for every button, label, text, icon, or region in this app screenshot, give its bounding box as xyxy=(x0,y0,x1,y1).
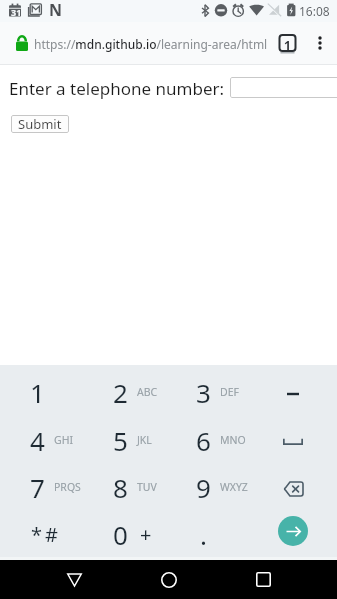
staticText: 3 xyxy=(196,375,211,410)
staticText: N xyxy=(49,0,63,21)
staticText: DEF xyxy=(220,385,239,399)
button[interactable]: More options xyxy=(311,22,329,65)
staticText: 5 xyxy=(113,423,128,458)
button[interactable]: 2 xyxy=(79,369,161,415)
staticText: 31 xyxy=(11,6,22,18)
button[interactable]: Submit xyxy=(11,115,69,133)
button[interactable]: 4 xyxy=(0,417,78,463)
button[interactable]: 5 xyxy=(79,417,161,463)
staticText: 7 xyxy=(30,470,45,505)
staticText: + xyxy=(140,521,152,548)
staticText: 6 xyxy=(196,423,211,458)
button[interactable]: Space xyxy=(263,418,323,464)
staticText: Submit xyxy=(18,115,62,133)
button[interactable]: 6 xyxy=(162,417,244,463)
staticText: TUV xyxy=(137,480,157,494)
staticText: # xyxy=(45,521,58,548)
button[interactable]: 1 xyxy=(0,369,78,415)
staticText: 2 xyxy=(113,375,128,410)
button[interactable]: Backspace xyxy=(263,466,323,512)
button[interactable]: 3 xyxy=(162,369,244,415)
staticText: 9 xyxy=(196,470,211,505)
button[interactable]: Tabs xyxy=(279,35,296,54)
button[interactable]: 7 xyxy=(0,464,78,510)
staticText: . xyxy=(200,517,207,552)
staticText: * xyxy=(31,521,43,548)
staticText: Enter a telephone number: xyxy=(9,77,225,100)
staticText: MNO xyxy=(220,433,246,447)
button[interactable]: * xyxy=(0,511,78,557)
staticText: https://mdn.github.io/learning-area/html xyxy=(34,36,269,52)
button[interactable]: 8 xyxy=(79,464,161,510)
button[interactable]: Back xyxy=(49,560,99,599)
staticText: PRQS xyxy=(54,480,81,494)
staticText: ABC xyxy=(137,385,158,399)
staticText: 0 xyxy=(113,517,128,552)
button[interactable]: Home xyxy=(144,560,194,599)
button[interactable]: Recent apps xyxy=(238,560,288,599)
staticText: 1 xyxy=(30,375,45,410)
staticText: WXYZ xyxy=(220,480,248,494)
button[interactable]: 0 xyxy=(79,511,161,557)
button[interactable] xyxy=(230,77,337,98)
staticText: JKL xyxy=(137,433,152,447)
staticText: 8 xyxy=(113,470,128,505)
button[interactable]: . xyxy=(162,511,244,557)
staticText: 16:08 xyxy=(299,3,330,19)
button[interactable]: Dash xyxy=(263,371,323,417)
button[interactable]: 9 xyxy=(162,464,244,510)
staticText: GHI xyxy=(54,433,73,447)
button[interactable]: Enter xyxy=(278,516,308,546)
staticText: 4 xyxy=(30,423,45,458)
staticText: 1 xyxy=(284,37,291,53)
